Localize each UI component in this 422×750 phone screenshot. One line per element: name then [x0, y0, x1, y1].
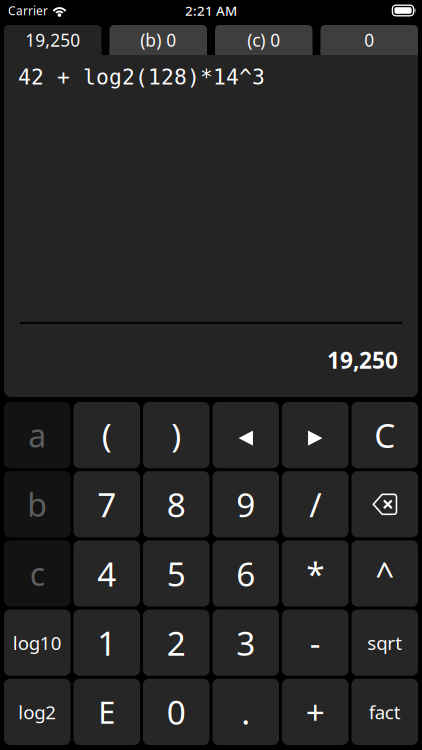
button[interactable]: [282, 402, 348, 468]
button[interactable]: c: [4, 540, 70, 607]
staticText: 0: [167, 690, 186, 734]
staticText: 4: [97, 551, 116, 596]
staticText: (: [102, 413, 112, 457]
button[interactable]: a: [4, 402, 70, 468]
button[interactable]: 0: [320, 25, 418, 55]
staticText: 3: [236, 621, 255, 665]
button[interactable]: (b) 0: [109, 25, 207, 55]
staticText: 5: [167, 551, 186, 596]
staticText: 7: [97, 482, 116, 526]
staticText: 1: [97, 621, 116, 665]
button[interactable]: 19,250: [4, 25, 101, 55]
staticText: Carrier: [8, 2, 48, 18]
staticText: c: [30, 552, 45, 595]
button[interactable]: /: [282, 471, 348, 537]
staticText: 2:21 AM: [185, 2, 237, 19]
staticText: .: [241, 690, 250, 734]
button[interactable]: 0: [143, 679, 209, 745]
button[interactable]: E: [73, 679, 140, 745]
staticText: E: [98, 691, 115, 732]
button[interactable]: (: [73, 402, 140, 468]
button[interactable]: .: [212, 679, 279, 745]
button[interactable]: ^: [351, 540, 418, 607]
staticText: 2: [167, 621, 186, 665]
button[interactable]: 6: [212, 540, 279, 607]
staticText: C: [374, 413, 395, 457]
button[interactable]: 4: [73, 540, 140, 607]
button[interactable]: fact: [351, 679, 418, 745]
staticText: log2: [18, 699, 56, 724]
button[interactable]: sqrt: [351, 610, 418, 676]
button[interactable]: -: [282, 610, 348, 676]
staticText: /: [309, 482, 321, 526]
staticText: +: [306, 690, 325, 734]
button[interactable]: 9: [212, 471, 279, 537]
staticText: 0: [364, 28, 374, 51]
staticText: 42 + log2(128)*14^3: [18, 65, 265, 89]
staticText: ): [171, 413, 181, 457]
button[interactable]: 8: [143, 471, 209, 537]
staticText: 19,250: [25, 28, 80, 51]
staticText: sqrt: [367, 630, 402, 655]
button[interactable]: log10: [4, 610, 70, 676]
button[interactable]: [212, 402, 279, 468]
button[interactable]: 1: [73, 610, 140, 676]
button[interactable]: (c) 0: [215, 25, 312, 55]
button[interactable]: 5: [143, 540, 209, 607]
staticText: 9: [236, 482, 255, 526]
staticText: b: [27, 483, 47, 526]
button[interactable]: b: [4, 471, 70, 537]
staticText: fact: [369, 699, 401, 724]
button[interactable]: *: [282, 540, 348, 607]
button[interactable]: +: [282, 679, 348, 745]
staticText: *: [306, 551, 324, 596]
staticText: a: [28, 414, 46, 456]
button[interactable]: 7: [73, 471, 140, 537]
staticText: 6: [236, 551, 255, 596]
button[interactable]: 3: [212, 610, 279, 676]
staticText: 19,250: [327, 345, 398, 375]
staticText: log10: [13, 630, 62, 655]
button[interactable]: log2: [4, 679, 70, 745]
button[interactable]: 2: [143, 610, 209, 676]
staticText: (b) 0: [140, 28, 176, 51]
button[interactable]: C: [351, 402, 418, 468]
staticText: 8: [167, 482, 186, 526]
staticText: -: [310, 621, 321, 665]
button[interactable]: [351, 471, 418, 537]
button[interactable]: ): [143, 402, 209, 468]
staticText: (c) 0: [247, 28, 280, 51]
staticText: ^: [375, 551, 394, 596]
